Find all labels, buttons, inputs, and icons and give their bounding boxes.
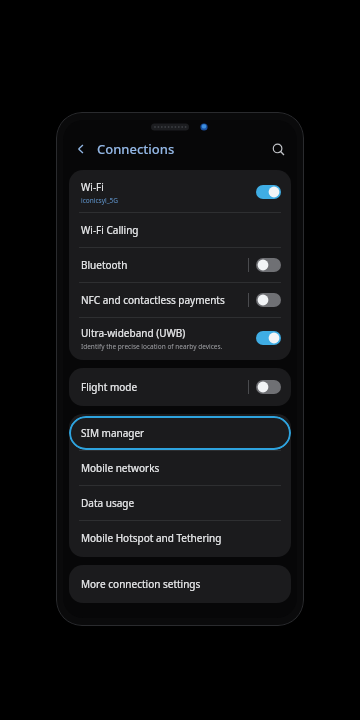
button[interactable]: Toggle off — [256, 380, 281, 394]
button[interactable]: Data usage — [69, 486, 291, 520]
button[interactable]: Mobile Hotspot and Tethering — [69, 521, 291, 555]
staticText: Ultra-wideband (UWB) — [81, 326, 186, 340]
button[interactable]: Back — [69, 137, 93, 161]
button[interactable]: Bluetooth — [69, 248, 291, 282]
staticText: Bluetooth — [81, 258, 128, 272]
button[interactable]: Search — [265, 136, 291, 162]
button[interactable]: Mobile networks — [69, 451, 291, 485]
button[interactable]: Flight mode — [69, 370, 291, 404]
button[interactable]: More connection settings — [69, 567, 291, 601]
button[interactable]: NFC and contactless payments — [69, 283, 291, 317]
staticText: NFC and contactless payments — [81, 293, 225, 307]
button[interactable]: Toggle off — [256, 293, 281, 307]
button[interactable]: Wi-Fi — [69, 172, 291, 212]
staticText: Mobile networks — [81, 461, 160, 475]
button[interactable]: Toggle on — [256, 331, 281, 345]
button[interactable]: SIM manager — [69, 416, 291, 450]
staticText: Wi-Fi — [81, 180, 104, 194]
staticText: Flight mode — [81, 380, 138, 394]
staticText: SIM manager — [81, 426, 145, 440]
staticText: Data usage — [81, 496, 135, 510]
staticText: Wi-Fi Calling — [81, 223, 139, 237]
button[interactable]: Wi-Fi Calling — [69, 213, 291, 247]
button[interactable]: Toggle off — [256, 258, 281, 272]
staticText: Mobile Hotspot and Tethering — [81, 531, 222, 545]
staticText: Identify the precise location of nearby … — [81, 342, 223, 351]
staticText: iconicsyl_5G — [81, 196, 118, 205]
button[interactable]: Ultra-wideband (UWB) — [69, 318, 291, 358]
staticText: Connections — [97, 140, 175, 158]
button[interactable]: Toggle on — [256, 185, 281, 199]
staticText: More connection settings — [81, 577, 201, 591]
